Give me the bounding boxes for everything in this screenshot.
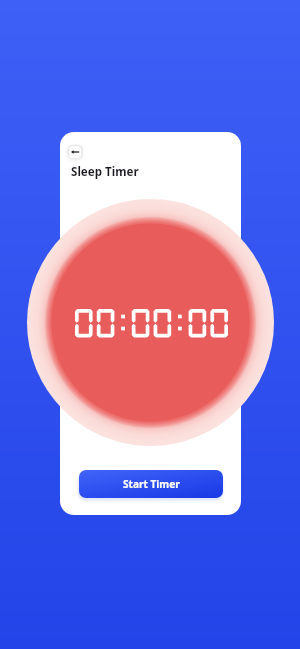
staticText: Sleep Timer	[71, 164, 139, 180]
button[interactable]: Start Timer	[79, 470, 223, 498]
button[interactable]: Back	[69, 146, 81, 158]
staticText: Start Timer	[123, 477, 180, 491]
